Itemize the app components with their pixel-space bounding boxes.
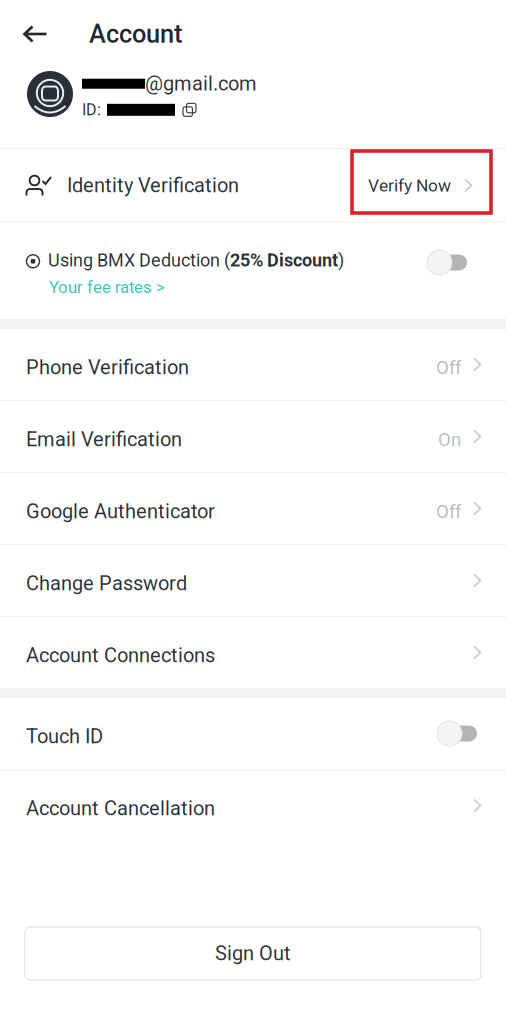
button[interactable]: Using BMX Deduction xyxy=(427,250,467,275)
button[interactable]: @gmail.com xyxy=(0,68,506,148)
button[interactable]: Account Connections xyxy=(0,617,506,688)
button[interactable]: Identity Verification xyxy=(0,149,506,222)
staticText: Account xyxy=(89,19,182,49)
staticText: Off xyxy=(436,357,461,378)
staticText: Account Cancellation xyxy=(26,797,215,820)
button[interactable]: Email Verification xyxy=(0,401,506,472)
staticText: Sign Out xyxy=(215,942,291,965)
button[interactable]: Account Cancellation xyxy=(0,770,506,841)
button[interactable]: Phone Verification xyxy=(0,329,506,400)
button[interactable]: Back xyxy=(0,0,89,68)
staticText: On xyxy=(438,429,461,450)
staticText: ID: xyxy=(82,100,101,119)
staticText: Your fee rates > xyxy=(49,278,165,297)
staticText: @gmail.com xyxy=(145,72,257,95)
button[interactable]: Sign Out xyxy=(25,927,481,980)
button[interactable]: Google Authenticator xyxy=(0,473,506,544)
staticText: Off xyxy=(436,501,461,522)
staticText: Using BMX Deduction (25% Discount) xyxy=(48,250,344,271)
staticText: Google Authenticator xyxy=(26,500,215,523)
button[interactable]: Your fee rates > xyxy=(26,278,165,297)
button[interactable]: Touch ID xyxy=(437,721,477,746)
staticText: Change Password xyxy=(26,572,187,595)
button[interactable]: Change Password xyxy=(0,545,506,616)
staticText: Email Verification xyxy=(26,428,182,451)
staticText: Verify Now xyxy=(368,175,451,196)
staticText: Phone Verification xyxy=(26,356,189,379)
staticText: Account Connections xyxy=(26,644,215,667)
staticText: Identity Verification xyxy=(67,174,239,197)
staticText: Touch ID xyxy=(26,725,103,748)
